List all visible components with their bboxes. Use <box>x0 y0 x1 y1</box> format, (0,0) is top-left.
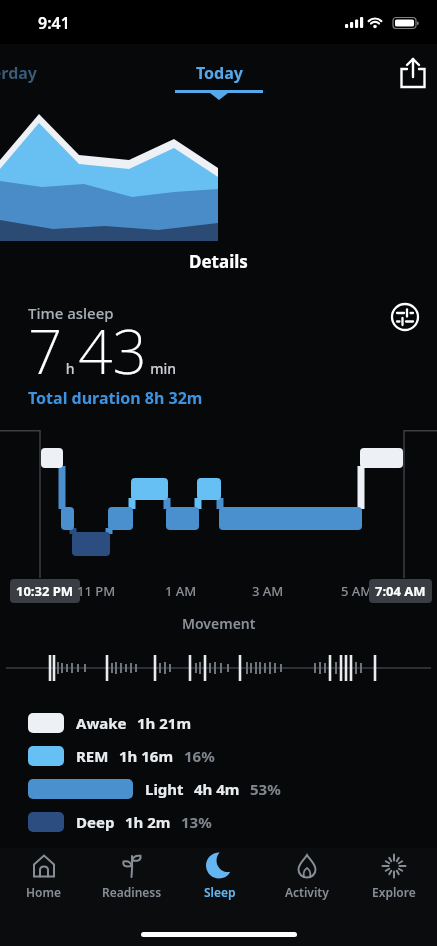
button[interactable]: Light <box>28 778 281 800</box>
staticText: 9:41 <box>38 12 70 34</box>
staticText: 5 AM <box>341 582 373 600</box>
button[interactable]: Activity <box>263 851 350 900</box>
button[interactable]: Deep <box>28 811 212 833</box>
staticText: 3 AM <box>252 582 284 600</box>
button[interactable] <box>399 56 427 90</box>
staticText: 1h 2m <box>125 812 171 832</box>
staticText: 7:04 AM <box>375 582 426 600</box>
staticText: Yesterday <box>0 62 37 84</box>
button[interactable] <box>391 303 419 331</box>
staticText: Activity <box>285 884 329 900</box>
staticText: 16% <box>184 746 215 766</box>
staticText: 10:32 PM <box>16 582 74 600</box>
staticText: Sleep <box>204 884 236 900</box>
staticText: REM <box>76 746 109 766</box>
staticText: 13% <box>181 812 212 832</box>
staticText: 11 PM <box>77 582 116 600</box>
button[interactable]: Readiness <box>88 851 176 900</box>
staticText: Details <box>189 250 248 273</box>
staticText: 1h 16m <box>119 746 174 766</box>
staticText: Time asleep <box>28 303 114 323</box>
staticText: 7 h 43 min <box>28 310 177 392</box>
staticText: Total duration 8h 32m <box>28 387 203 409</box>
button[interactable]: Sleep <box>176 851 263 900</box>
staticText: 53% <box>250 779 281 799</box>
staticText: 4h 4m <box>194 779 240 799</box>
staticText: Deep <box>76 812 115 832</box>
button[interactable]: REM <box>28 745 215 767</box>
staticText: Home <box>26 884 62 900</box>
button[interactable]: Explore <box>350 851 437 900</box>
button[interactable]: Today <box>175 62 263 100</box>
staticText: 1h 21m <box>137 713 192 733</box>
staticText: Readiness <box>102 884 162 900</box>
staticText: Explore <box>372 884 416 900</box>
staticText: Today <box>196 62 243 84</box>
staticText: 1 AM <box>165 582 197 600</box>
button[interactable]: Home <box>0 851 88 900</box>
staticText: Light <box>145 779 184 799</box>
staticText: Movement <box>182 614 256 633</box>
button[interactable]: Awake <box>28 712 192 734</box>
staticText: Awake <box>76 713 127 733</box>
